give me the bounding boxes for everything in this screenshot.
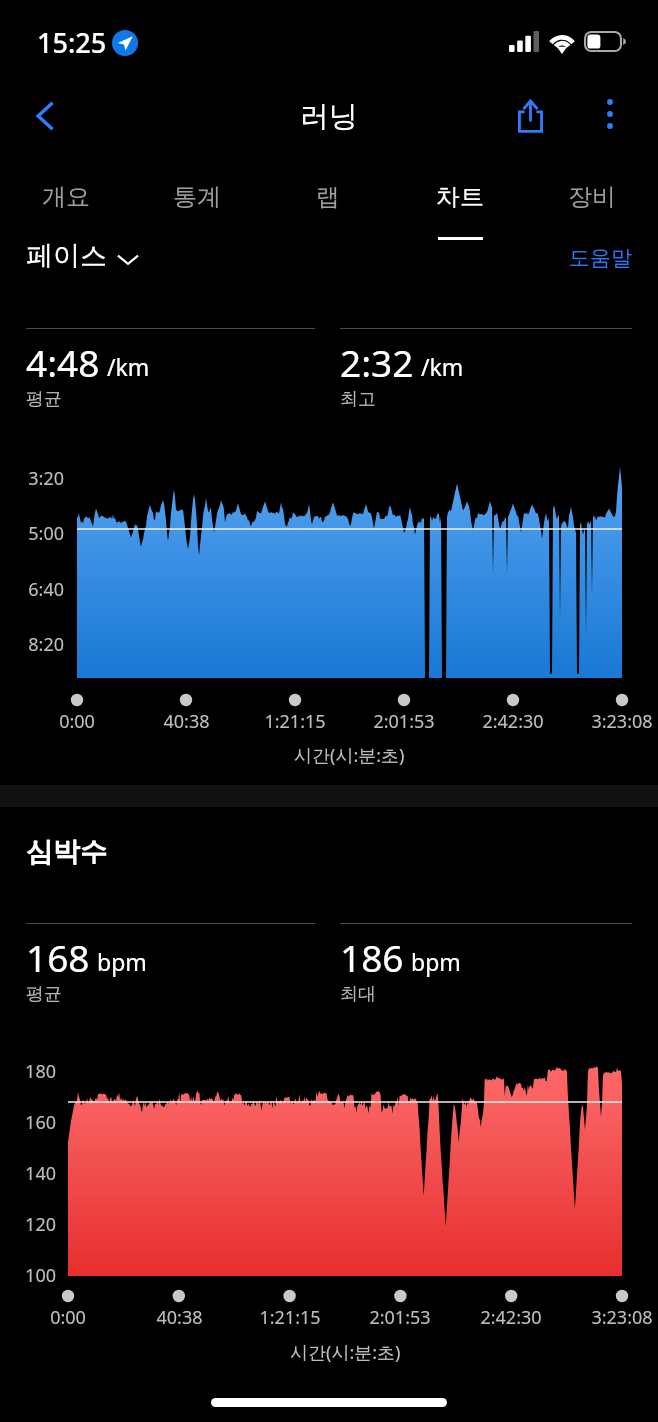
staticText: 시간(시:분:초) <box>294 743 405 768</box>
staticText: /km <box>421 351 464 382</box>
staticText: 40:38 <box>156 1305 203 1330</box>
staticText: 3:23:08 <box>591 709 653 734</box>
staticText: 통계 <box>173 182 221 212</box>
staticText: bpm <box>97 946 147 977</box>
staticText: 140 <box>25 1161 56 1186</box>
button[interactable]: 도움말 <box>569 245 632 271</box>
staticText: 장비 <box>568 182 616 212</box>
staticText: 평균 <box>26 388 62 411</box>
staticText: 3:20 <box>28 466 64 491</box>
button[interactable]: More options <box>584 88 636 140</box>
staticText: 1:21:15 <box>259 1305 321 1330</box>
button[interactable]: 차트 <box>394 170 526 240</box>
staticText: 도움말 <box>569 245 632 271</box>
staticText: 시간(시:분:초) <box>290 1340 401 1365</box>
staticText: 최대 <box>340 983 376 1006</box>
staticText: 120 <box>25 1212 56 1237</box>
button[interactable]: Back <box>18 90 72 142</box>
button[interactable]: 개요 <box>0 170 131 240</box>
button[interactable]: Share <box>502 88 558 144</box>
staticText: 180 <box>25 1059 56 1084</box>
staticText: 2:42:30 <box>482 709 544 734</box>
staticText: 평균 <box>26 983 62 1006</box>
staticText: 1:21:15 <box>264 709 326 734</box>
button[interactable]: 랩 <box>262 170 394 240</box>
staticText: 2:32 <box>340 337 414 387</box>
staticText: 2:01:53 <box>369 1305 431 1330</box>
staticText: 5:00 <box>28 521 64 546</box>
staticText: 4:48 <box>26 337 100 387</box>
staticText: 개요 <box>42 182 90 212</box>
staticText: 160 <box>25 1110 56 1135</box>
button[interactable]: 장비 <box>526 170 658 240</box>
staticText: 186 <box>340 932 404 982</box>
staticText: 2:01:53 <box>373 709 435 734</box>
staticText: 페이스 <box>26 239 107 273</box>
staticText: 심박수 <box>26 835 107 869</box>
staticText: /km <box>107 351 150 382</box>
staticText: 0:00 <box>59 709 95 734</box>
staticText: 40:38 <box>163 709 210 734</box>
staticText: 15:25 <box>37 24 107 61</box>
staticText: 0:00 <box>50 1305 86 1330</box>
staticText: 6:40 <box>28 577 64 602</box>
staticText: bpm <box>411 946 461 977</box>
staticText: 랩 <box>316 182 340 212</box>
staticText: 100 <box>25 1263 56 1288</box>
staticText: 3:23:08 <box>591 1305 653 1330</box>
staticText: 최고 <box>340 388 376 411</box>
staticText: 168 <box>26 932 90 982</box>
staticText: 8:20 <box>28 632 64 657</box>
button[interactable]: 페이스 <box>26 239 138 273</box>
staticText: 2:42:30 <box>480 1305 542 1330</box>
staticText: 러닝 <box>300 98 358 135</box>
staticText: 차트 <box>436 182 484 212</box>
button[interactable]: 통계 <box>131 170 262 240</box>
